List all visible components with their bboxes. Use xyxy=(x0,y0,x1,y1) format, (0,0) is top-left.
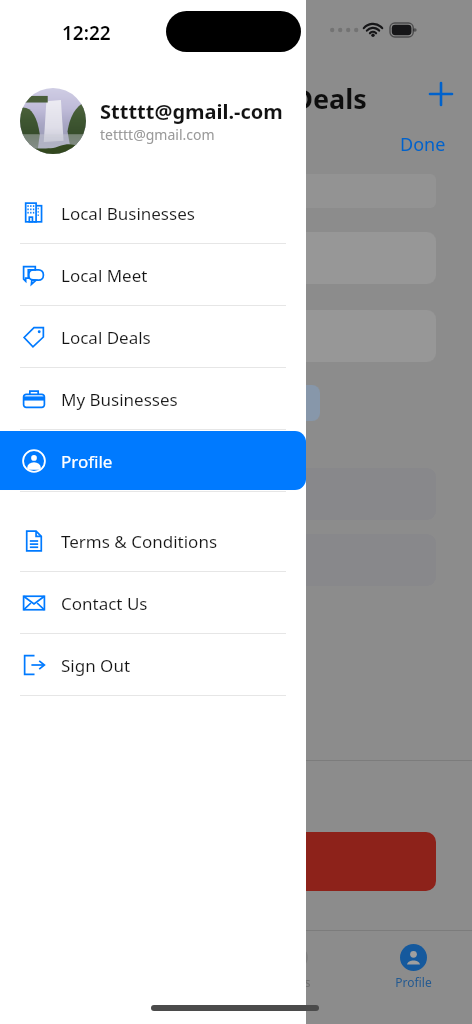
button[interactable]: Local Meet xyxy=(0,244,306,305)
staticText: Contact Us xyxy=(61,592,148,615)
staticText: Profile xyxy=(395,974,432,990)
button[interactable]: My Businesses xyxy=(0,368,306,429)
button[interactable]: Local Deals xyxy=(0,306,306,367)
staticText: Sign Out xyxy=(61,654,131,677)
staticText: Local Deals xyxy=(216,80,367,117)
button[interactable]: Sign Out xyxy=(0,634,306,695)
staticText: Deals xyxy=(279,974,311,990)
button[interactable]: Sttttt@gmail.-com xyxy=(20,88,292,154)
button[interactable]: Profile xyxy=(0,431,306,490)
button[interactable]: Terms & Conditions xyxy=(0,510,306,571)
staticText: Terms & Conditions xyxy=(61,530,218,553)
staticText: My Businesses xyxy=(61,388,178,411)
staticText: Local Meet xyxy=(61,264,148,287)
button[interactable]: Local Businesses xyxy=(0,182,306,243)
staticText: Done xyxy=(400,132,446,157)
button[interactable]: Deals xyxy=(236,936,354,990)
button[interactable]: Delete Account xyxy=(36,832,436,891)
staticText: Profile xyxy=(61,450,113,473)
staticText: 12:22 xyxy=(62,20,111,46)
staticText: Local Deals xyxy=(61,326,151,349)
button[interactable]: Profile xyxy=(354,936,472,990)
button[interactable]: Done xyxy=(396,128,450,161)
staticText: Sttttt@gmail.-com xyxy=(100,98,283,125)
button[interactable]: Contact Us xyxy=(0,572,306,633)
staticText: Local Businesses xyxy=(61,202,195,225)
button[interactable]: Add xyxy=(425,78,457,110)
staticText: tetttt@gmail.com xyxy=(100,125,215,144)
